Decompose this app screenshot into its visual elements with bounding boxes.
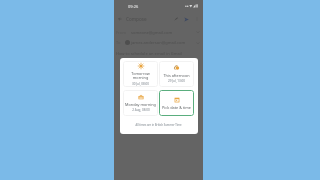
staticText: 09:26 — [128, 4, 139, 9]
button[interactable]: Send — [182, 15, 190, 23]
button[interactable]: Back — [116, 15, 124, 23]
staticText: 30 Jul, 08:00 — [132, 82, 149, 86]
staticText: Monday morning — [125, 102, 156, 107]
staticText: Pick date & time — [162, 105, 191, 110]
button[interactable]: Tomorrow morning — [123, 61, 158, 87]
staticText: Compose — [126, 16, 147, 22]
staticText: james.anderson@gmail.com — [131, 40, 186, 45]
staticText: This afternoon — [163, 73, 190, 78]
button[interactable]: This afternoon — [159, 61, 194, 87]
staticText: How to schedule an email in Gmail — [116, 51, 182, 56]
button[interactable]: Monday morning — [123, 90, 158, 116]
staticText: 29 Jul, 13:00 — [168, 79, 185, 83]
button[interactable]: Attach file — [172, 15, 180, 23]
button[interactable]: Pick date & time — [159, 90, 194, 116]
staticText: 2 Aug, 08:00 — [132, 108, 150, 112]
staticText: someone@gmail.com — [131, 30, 173, 35]
staticText: Tomorrow morning — [131, 71, 150, 81]
staticText: All times are in British Summer Time — [123, 123, 194, 127]
